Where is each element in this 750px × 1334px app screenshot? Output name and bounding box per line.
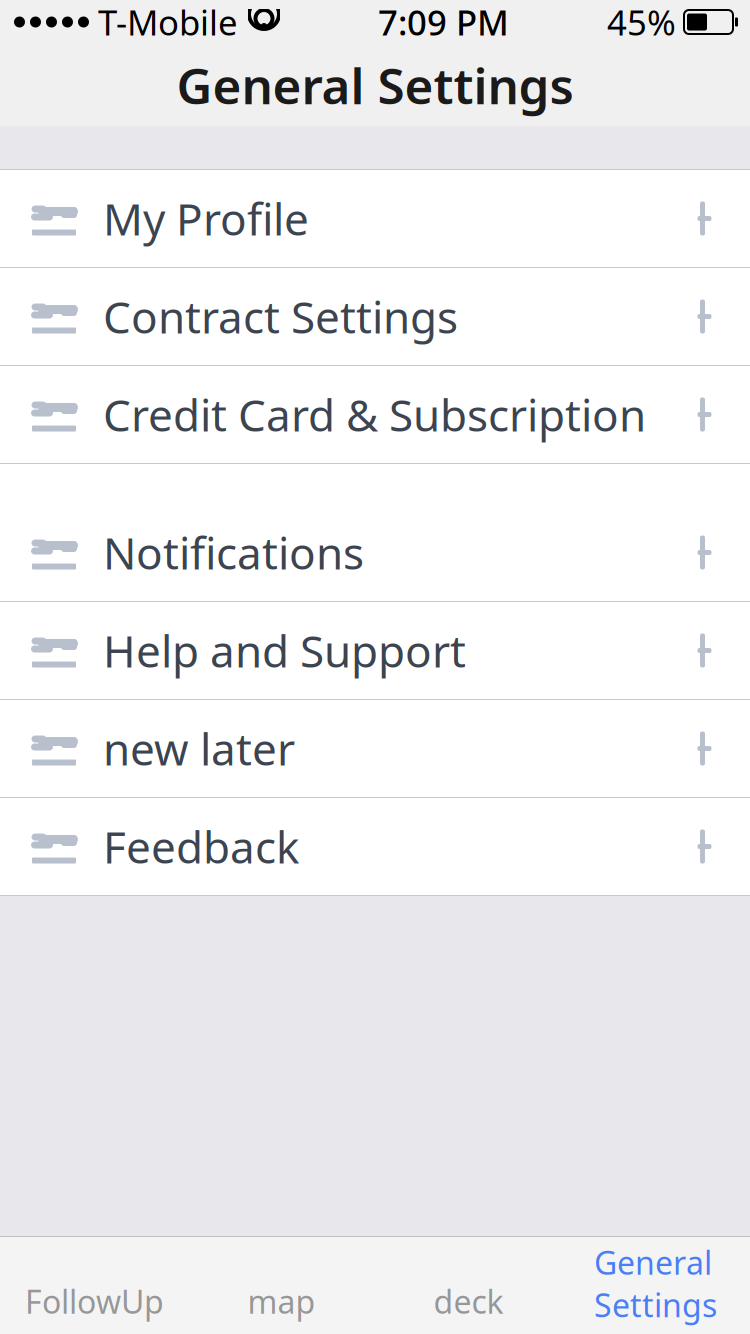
staticText: Contract Settings (103, 287, 458, 346)
staticText: T-Mobile (98, 0, 238, 45)
staticText: new later (103, 719, 295, 778)
staticText: 7:09 PM (378, 0, 509, 45)
staticText: Help and Support (103, 621, 466, 680)
staticText: General Settings (176, 52, 573, 118)
staticText: deck (433, 1280, 503, 1322)
button[interactable]: Help and Support (0, 602, 750, 699)
button[interactable]: FollowUp (1, 1236, 188, 1334)
button[interactable]: Feedback (0, 798, 750, 895)
staticText: map (247, 1280, 315, 1322)
button[interactable]: General Settings (562, 1236, 749, 1334)
staticText: FollowUp (25, 1280, 164, 1322)
staticText: 45% (607, 0, 676, 45)
staticText: Feedback (103, 817, 299, 876)
staticText: My Profile (103, 189, 309, 248)
button[interactable]: map (188, 1236, 375, 1334)
staticText: Credit Card & Subscription (103, 385, 646, 444)
button[interactable]: deck (375, 1236, 562, 1334)
button[interactable]: Contract Settings (0, 268, 750, 365)
staticText: Notifications (103, 523, 364, 582)
button[interactable]: My Profile (0, 170, 750, 267)
staticText: General Settings (594, 1241, 717, 1326)
button[interactable]: Notifications (0, 504, 750, 601)
button[interactable]: new later (0, 700, 750, 797)
button[interactable]: Credit Card & Subscription (0, 366, 750, 463)
